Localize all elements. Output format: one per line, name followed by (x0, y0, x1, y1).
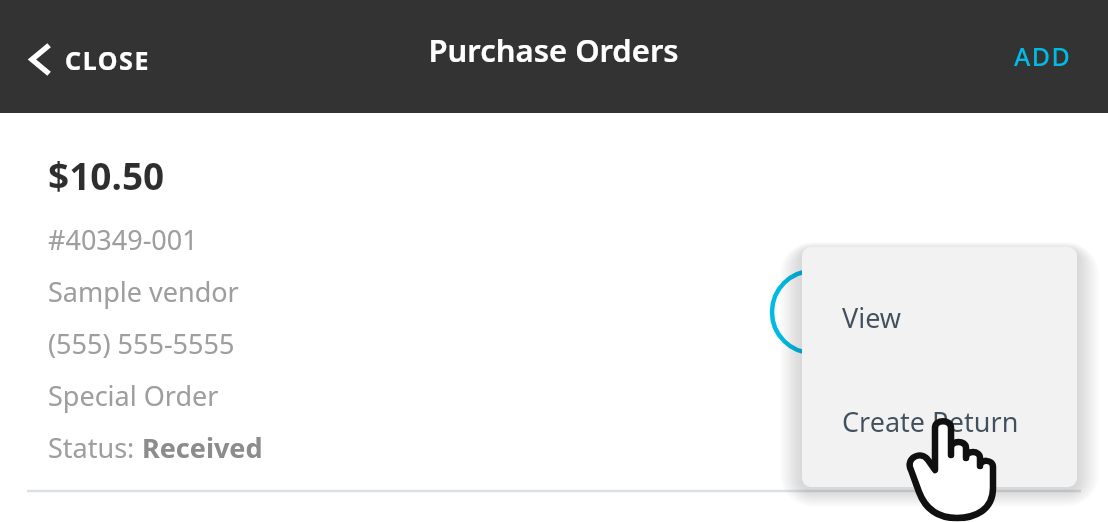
button[interactable] (0, 113, 1108, 493)
button[interactable] (802, 247, 1077, 367)
button[interactable] (975, 30, 1073, 82)
button[interactable] (802, 367, 1077, 487)
button[interactable] (14, 28, 194, 86)
other: Pointer (895, 418, 999, 522)
